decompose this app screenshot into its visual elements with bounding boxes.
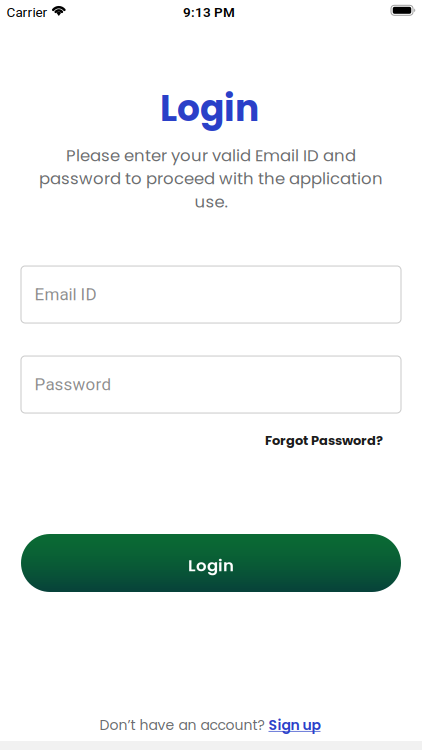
- staticText: password to proceed with the application: [39, 167, 383, 190]
- staticText: Login: [160, 83, 259, 134]
- staticText: Sign up: [268, 715, 320, 735]
- button[interactable]: Password: [21, 356, 401, 413]
- staticText: Please enter your valid Email ID and: [66, 144, 356, 167]
- button[interactable]: Forgot Password?: [265, 431, 383, 450]
- staticText: Login: [188, 554, 234, 577]
- button[interactable]: Email ID: [21, 266, 401, 323]
- staticText: Carrier: [6, 4, 47, 20]
- staticText: Don’t have an account?: [99, 715, 264, 735]
- button[interactable]: Login: [21, 534, 401, 592]
- staticText: Password: [34, 374, 111, 394]
- staticText: Forgot Password?: [265, 431, 383, 450]
- staticText: use.: [194, 190, 227, 213]
- staticText: Email ID: [34, 284, 96, 304]
- button[interactable]: Sign up: [268, 715, 320, 735]
- staticText: 9:13 PM: [183, 4, 235, 20]
